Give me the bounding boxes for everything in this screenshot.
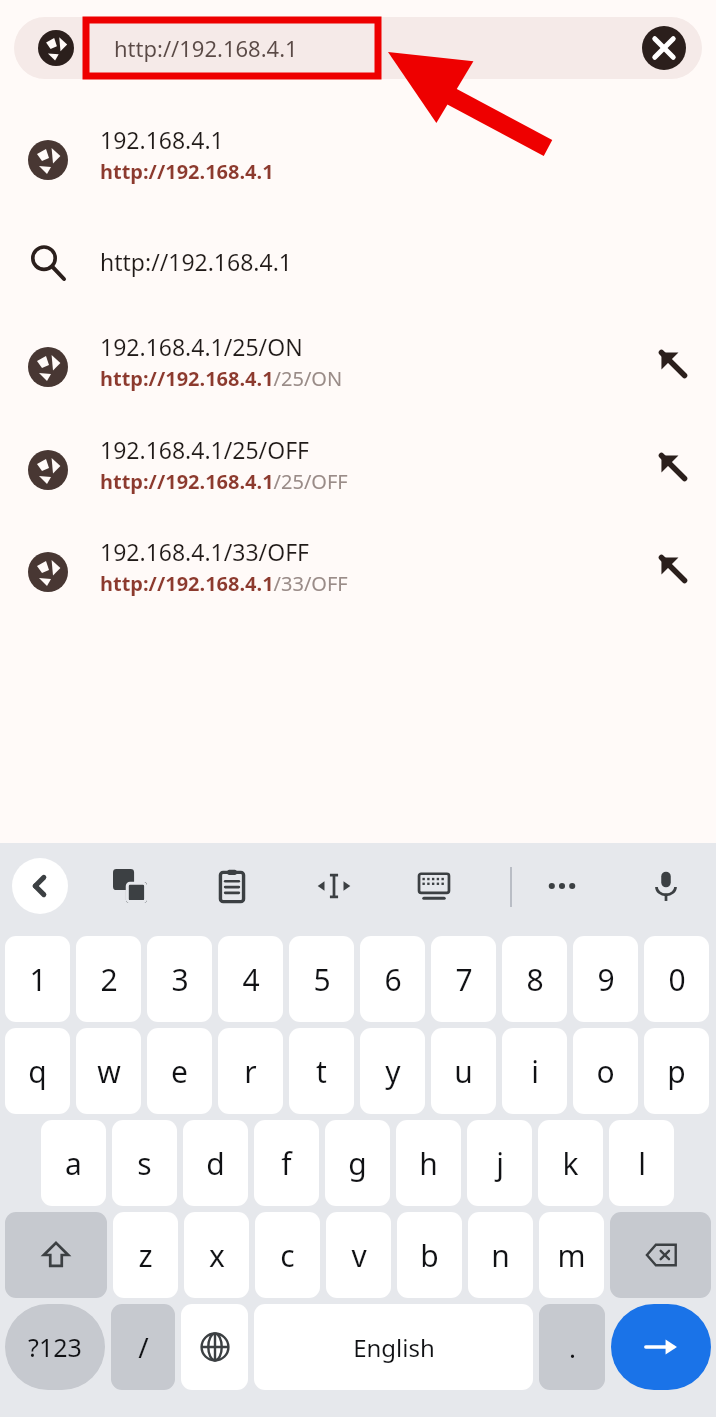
staticText: d [206, 1143, 225, 1184]
staticText: 192.168.4.1/25/OFF [100, 434, 310, 465]
staticText: w [97, 1051, 121, 1092]
button[interactable]: f [254, 1120, 319, 1206]
button[interactable]: 0 [644, 936, 709, 1022]
button[interactable]: 8 [502, 936, 567, 1022]
staticText: y [385, 1051, 401, 1092]
button[interactable]: z [113, 1212, 178, 1298]
staticText: 192.168.4.1/33/OFF [100, 536, 310, 567]
staticText: http://192.168.4.1 [100, 158, 274, 185]
button[interactable]: c [255, 1212, 320, 1298]
button[interactable]: w [76, 1028, 141, 1114]
button[interactable]: q [5, 1028, 70, 1114]
button[interactable]: k [538, 1120, 603, 1206]
button[interactable]: t [289, 1028, 354, 1114]
button[interactable]: m [539, 1212, 604, 1298]
staticText: m [557, 1235, 586, 1276]
button[interactable]: e [147, 1028, 212, 1114]
button[interactable]: http://192.168.4.1 [0, 228, 716, 294]
button[interactable]: v [326, 1212, 391, 1298]
staticText: q [28, 1051, 47, 1092]
staticText: z [138, 1235, 153, 1276]
button[interactable]: http://192.168.4.1 [14, 17, 702, 79]
button[interactable]: Shift [5, 1212, 107, 1298]
button[interactable]: 7 [431, 936, 496, 1022]
button[interactable]: b [397, 1212, 462, 1298]
button[interactable]: 4 [218, 936, 283, 1022]
button[interactable]: Back [12, 858, 68, 914]
button[interactable]: 192.168.4.1 [0, 118, 716, 196]
staticText: v [351, 1235, 367, 1276]
staticText: http://192.168.4.1 [100, 246, 292, 277]
button[interactable]: ?123 [5, 1304, 105, 1390]
button[interactable]: / [111, 1304, 175, 1390]
staticText: 0 [668, 959, 686, 1000]
staticText: i [531, 1051, 539, 1092]
button[interactable]: Go [611, 1304, 711, 1390]
button[interactable]: x [184, 1212, 249, 1298]
button[interactable]: y [360, 1028, 425, 1114]
staticText: o [596, 1051, 615, 1092]
staticText: 2 [100, 959, 118, 1000]
staticText: 192.168.4.1/25/ON [100, 331, 303, 362]
button[interactable]: r [218, 1028, 283, 1114]
button[interactable]: Keyboard mode [406, 858, 462, 914]
staticText: 9 [597, 959, 615, 1000]
staticText: f [281, 1143, 292, 1184]
button[interactable]: 2 [76, 936, 141, 1022]
staticText: l [638, 1143, 646, 1184]
staticText: 5 [313, 959, 331, 1000]
button[interactable]: Edit suggestion [648, 544, 698, 594]
staticText: h [419, 1143, 438, 1184]
button[interactable]: n [468, 1212, 533, 1298]
button[interactable]: More options [534, 858, 590, 914]
button[interactable]: Clear [642, 26, 686, 70]
button[interactable]: Edit suggestion [648, 442, 698, 492]
staticText: k [562, 1143, 579, 1184]
button[interactable]: 192.168.4.1/25/ON [0, 325, 716, 403]
staticText: u [454, 1051, 473, 1092]
staticText: 8 [526, 959, 544, 1000]
button[interactable]: p [644, 1028, 709, 1114]
button[interactable]: Edit suggestion [648, 339, 698, 389]
staticText: http://192.168.4.1/25/ON [100, 365, 343, 392]
button[interactable]: Clipboard [204, 858, 260, 914]
staticText: s [137, 1143, 152, 1184]
button[interactable]: . [539, 1304, 605, 1390]
button[interactable]: o [573, 1028, 638, 1114]
staticText: b [420, 1235, 439, 1276]
button[interactable]: 9 [573, 936, 638, 1022]
button[interactable]: English [254, 1304, 533, 1390]
button[interactable]: 3 [147, 936, 212, 1022]
staticText: 4 [242, 959, 260, 1000]
button[interactable]: u [431, 1028, 496, 1114]
button[interactable]: l [609, 1120, 674, 1206]
staticText: English [353, 1331, 435, 1364]
button[interactable]: Change language [181, 1304, 248, 1390]
button[interactable]: 5 [289, 936, 354, 1022]
button[interactable]: s [112, 1120, 177, 1206]
button[interactable]: j [467, 1120, 532, 1206]
staticText: 192.168.4.1 [100, 124, 224, 155]
staticText: http://192.168.4.1/25/OFF [100, 468, 348, 495]
button[interactable]: a [41, 1120, 106, 1206]
button[interactable]: Translate [102, 858, 158, 914]
button[interactable]: d [183, 1120, 248, 1206]
staticText: r [244, 1051, 257, 1092]
button[interactable]: Backspace [610, 1212, 711, 1298]
button[interactable]: h [396, 1120, 461, 1206]
button[interactable]: 6 [360, 936, 425, 1022]
button[interactable]: 192.168.4.1/33/OFF [0, 530, 716, 608]
staticText: http://192.168.4.1 [114, 33, 298, 63]
staticText: 3 [171, 959, 189, 1000]
staticText: ?123 [28, 1330, 82, 1364]
staticText: . [569, 1330, 576, 1365]
staticText: http://192.168.4.1/33/OFF [100, 570, 348, 597]
button[interactable]: g [325, 1120, 390, 1206]
button[interactable]: 192.168.4.1/25/OFF [0, 428, 716, 506]
button[interactable]: 1 [5, 936, 70, 1022]
button[interactable]: Voice input [638, 858, 694, 914]
button[interactable]: i [502, 1028, 567, 1114]
staticText: 7 [455, 959, 473, 1000]
staticText: e [171, 1051, 188, 1092]
button[interactable]: Text cursor [306, 858, 362, 914]
